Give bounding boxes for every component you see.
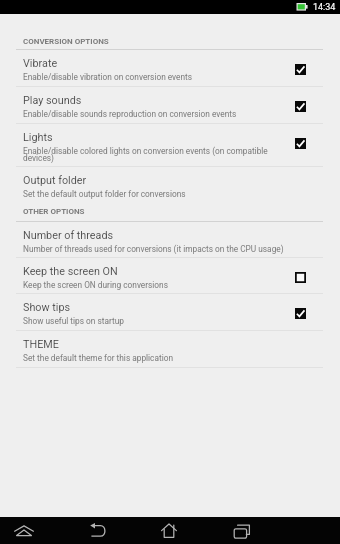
button[interactable]: Show tips [0,294,340,331]
button[interactable]: Play sounds [0,87,340,124]
button[interactable]: THEME [0,331,340,368]
staticText: Enable/disable vibration on conversion e… [23,72,193,82]
staticText: Keep the screen ON [23,265,118,278]
button[interactable]: Recent apps [218,517,266,544]
staticText: Play sounds [23,94,82,107]
staticText: Set the default theme for this applicati… [23,353,173,363]
button[interactable]: Lights [0,124,340,167]
button[interactable]: Show navigation [0,517,48,544]
staticText: Number of threads used for conversions (… [23,244,284,254]
button[interactable]: Number of threads [0,222,340,258]
staticText: Output folder [23,174,87,187]
staticText: Show tips [23,301,71,314]
staticText: THEME [23,338,59,351]
button[interactable]: Output folder [0,167,340,200]
staticText: Lights [23,131,53,144]
button[interactable]: Back [74,517,122,544]
staticText: Keep the screen ON during conversions [23,280,168,290]
staticText: Vibrate [23,57,58,70]
staticText: Number of threads [23,229,114,242]
button[interactable]: Home [145,517,193,544]
staticText: CONVERSION OPTIONS [23,37,109,46]
button[interactable]: Keep the screen ON [0,258,340,294]
staticText: 14:34 [313,2,336,13]
staticText: Show useful tips on startup [23,316,124,326]
button[interactable]: Vibrate [0,50,340,87]
staticText: Enable/disable sounds reproduction on co… [23,109,237,119]
staticText: Enable/disable colored lights on convers… [23,146,291,163]
staticText: OTHER OPTIONS [23,207,85,216]
staticText: Set the default output folder for conver… [23,189,186,199]
